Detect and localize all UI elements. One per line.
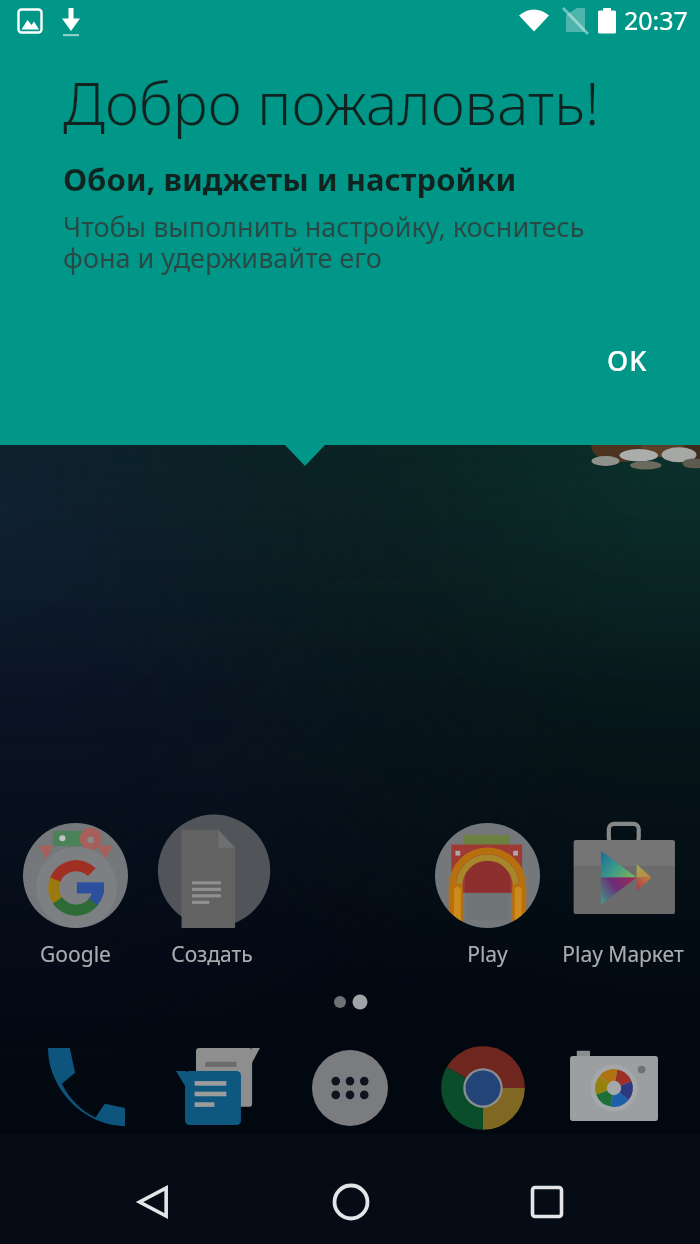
button[interactable]: All apps xyxy=(304,1042,396,1134)
staticText: Чтобы выполнить настройку, коснитесь фон… xyxy=(63,208,585,276)
button[interactable]: Chrome xyxy=(437,1042,529,1134)
button[interactable]: Создать xyxy=(127,823,297,969)
button[interactable]: Camera xyxy=(568,1042,660,1134)
button[interactable]: Messages xyxy=(167,1042,259,1134)
staticText: Обои, виджеты и настройки xyxy=(63,158,517,200)
button[interactable]: Back xyxy=(104,1152,204,1244)
staticText: Google xyxy=(40,940,111,969)
staticText: Play xyxy=(467,940,508,969)
button[interactable]: Play xyxy=(402,823,572,969)
button[interactable]: Recents xyxy=(497,1152,597,1244)
staticText: Добро пожаловать! xyxy=(63,62,600,142)
staticText: OK xyxy=(607,342,648,379)
button[interactable]: Google xyxy=(0,823,160,969)
button[interactable]: OK xyxy=(595,334,660,387)
staticText: Создать xyxy=(171,940,253,969)
staticText: Play Маркет xyxy=(562,940,684,969)
button[interactable]: Phone xyxy=(39,1042,131,1134)
button[interactable]: Home xyxy=(301,1152,401,1244)
staticText: 20:37 xyxy=(624,3,688,37)
button[interactable]: Play Маркет xyxy=(538,823,700,969)
